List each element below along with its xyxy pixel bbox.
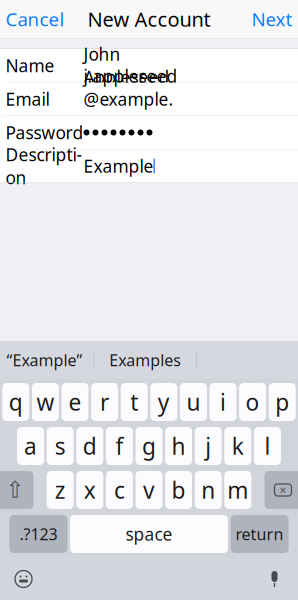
staticText: l <box>264 431 270 461</box>
staticText: d <box>83 431 97 461</box>
button[interactable]: b <box>165 471 192 509</box>
staticText: u <box>186 387 200 417</box>
button[interactable]: Cancel <box>0 0 72 38</box>
button[interactable]: d <box>76 427 103 465</box>
staticText: Example <box>83 154 153 177</box>
staticText: Password <box>5 121 83 144</box>
button[interactable]: l <box>254 427 281 465</box>
button[interactable]: e <box>61 383 88 421</box>
staticText: i <box>220 387 226 417</box>
staticText: “Example” <box>6 349 82 371</box>
button[interactable]: x <box>76 471 103 509</box>
staticText: t <box>130 387 138 417</box>
button[interactable]: m <box>224 471 251 509</box>
staticText: return <box>236 523 284 545</box>
staticText: New Account <box>87 6 210 32</box>
button[interactable]: Description <box>0 149 298 182</box>
button[interactable]: t <box>121 383 148 421</box>
button[interactable]: u <box>180 383 207 421</box>
button[interactable]: i <box>209 383 236 421</box>
staticText: k <box>232 431 244 461</box>
staticText: .?123 <box>19 523 57 545</box>
button[interactable]: p <box>269 383 296 421</box>
button[interactable]: s <box>47 427 74 465</box>
button[interactable]: Examples <box>94 341 196 379</box>
button[interactable]: o <box>239 383 266 421</box>
button[interactable]: v <box>135 471 162 509</box>
staticText: x <box>84 475 96 505</box>
staticText: Examples <box>109 349 181 371</box>
staticText: e <box>68 387 81 417</box>
button[interactable]: Shift <box>0 471 33 509</box>
button[interactable]: “Example” <box>0 341 93 379</box>
staticText: space <box>125 522 172 545</box>
staticText: g <box>142 431 156 461</box>
staticText: m <box>227 475 248 505</box>
button[interactable]: Email <box>0 82 298 115</box>
button[interactable]: y <box>150 383 177 421</box>
button[interactable]: c <box>106 471 133 509</box>
staticText: j <box>205 431 211 461</box>
button[interactable]: Password <box>0 116 298 149</box>
button[interactable]: space <box>70 515 228 553</box>
staticText: o <box>246 387 260 417</box>
staticText: n <box>201 475 215 505</box>
staticText: w <box>36 387 54 417</box>
staticText: b <box>172 475 186 505</box>
button[interactable]: j <box>195 427 222 465</box>
button[interactable]: .?123 <box>9 515 67 553</box>
button[interactable]: z <box>47 471 74 509</box>
staticText: v <box>143 475 155 505</box>
button[interactable]: g <box>135 427 162 465</box>
button[interactable]: r <box>91 383 118 421</box>
staticText: Email <box>5 87 49 110</box>
button[interactable]: Dictation <box>253 558 295 600</box>
button[interactable]: Next <box>243 0 298 38</box>
staticText: a <box>24 431 37 461</box>
button[interactable]: Delete <box>264 471 298 509</box>
staticText: Name <box>5 54 54 77</box>
staticText: y <box>158 387 170 417</box>
button[interactable]: n <box>195 471 222 509</box>
button[interactable]: a <box>17 427 44 465</box>
staticText: q <box>9 387 23 417</box>
button[interactable]: Name <box>0 49 298 82</box>
staticText: z <box>55 475 66 505</box>
staticText: s <box>55 431 66 461</box>
staticText: r <box>100 387 109 417</box>
button[interactable]: f <box>106 427 133 465</box>
button[interactable]: q <box>2 383 29 421</box>
staticText: Description <box>5 143 82 189</box>
staticText: j.appleseed@example.com <box>83 64 177 134</box>
staticText: p <box>275 387 289 417</box>
staticText: John Appleseed <box>83 42 169 88</box>
button[interactable]: k <box>224 427 251 465</box>
staticText: c <box>114 475 125 505</box>
staticText: × <box>279 482 286 498</box>
staticText: Cancel <box>5 7 64 31</box>
button[interactable]: h <box>165 427 192 465</box>
button[interactable]: w <box>32 383 59 421</box>
staticText: Next <box>251 7 292 31</box>
staticText: f <box>115 431 123 461</box>
button[interactable]: Emoji keyboard <box>2 558 44 600</box>
staticText: h <box>172 431 186 461</box>
staticText: ⇧ <box>5 477 24 503</box>
button[interactable]: return <box>231 515 289 553</box>
